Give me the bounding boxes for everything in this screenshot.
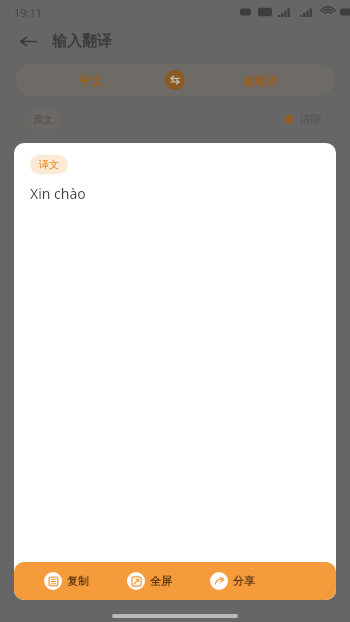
button[interactable]: 复制: [44, 568, 89, 594]
button[interactable]: 全屏: [127, 568, 172, 594]
staticText: 输入翻译: [52, 32, 112, 51]
staticText: 译文: [39, 158, 59, 171]
staticText: 复制: [67, 574, 89, 588]
button[interactable]: 分享: [210, 568, 255, 594]
button[interactable]: Back: [14, 27, 42, 55]
staticText: 分享: [233, 574, 255, 588]
button[interactable]: 清除: [279, 108, 326, 130]
button[interactable]: 中文: [16, 73, 165, 88]
button[interactable]: Swap languages: [165, 70, 185, 90]
staticText: 全屏: [150, 574, 172, 588]
staticText: 越南语: [242, 73, 278, 88]
staticText: 中文: [79, 73, 103, 88]
staticText: Xin chào: [30, 184, 86, 203]
staticText: 19:11: [14, 5, 43, 20]
button[interactable]: 越南语: [185, 73, 334, 88]
staticText: 原文: [33, 113, 53, 126]
staticText: 清除: [300, 112, 322, 126]
